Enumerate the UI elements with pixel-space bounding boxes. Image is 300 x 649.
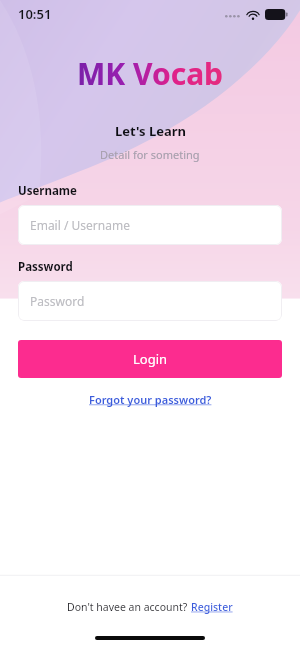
- other: Battery: [265, 9, 288, 20]
- button[interactable]: Register: [191, 600, 233, 614]
- other: Cellular signal: [225, 10, 242, 20]
- staticText: Let's Learn: [115, 122, 186, 140]
- staticText: Username: [18, 183, 77, 199]
- button[interactable]: Password: [18, 281, 282, 321]
- staticText: Detail for someting: [100, 147, 200, 162]
- staticText: Password: [18, 259, 73, 275]
- staticText: 10:51: [18, 5, 52, 23]
- button[interactable]: Email / Username: [18, 205, 282, 245]
- staticText: Register: [191, 600, 233, 614]
- staticText: Email / Username: [30, 217, 130, 233]
- staticText: Don't havee an account?: [67, 600, 191, 614]
- staticText: Forgot your password?: [89, 392, 212, 407]
- staticText: Password: [30, 293, 85, 309]
- other: Wi-Fi: [246, 9, 260, 20]
- staticText: Login: [133, 350, 168, 368]
- staticText: MK Vocab: [77, 53, 224, 94]
- button[interactable]: Login: [18, 340, 282, 378]
- button[interactable]: Forgot your password?: [83, 390, 218, 409]
